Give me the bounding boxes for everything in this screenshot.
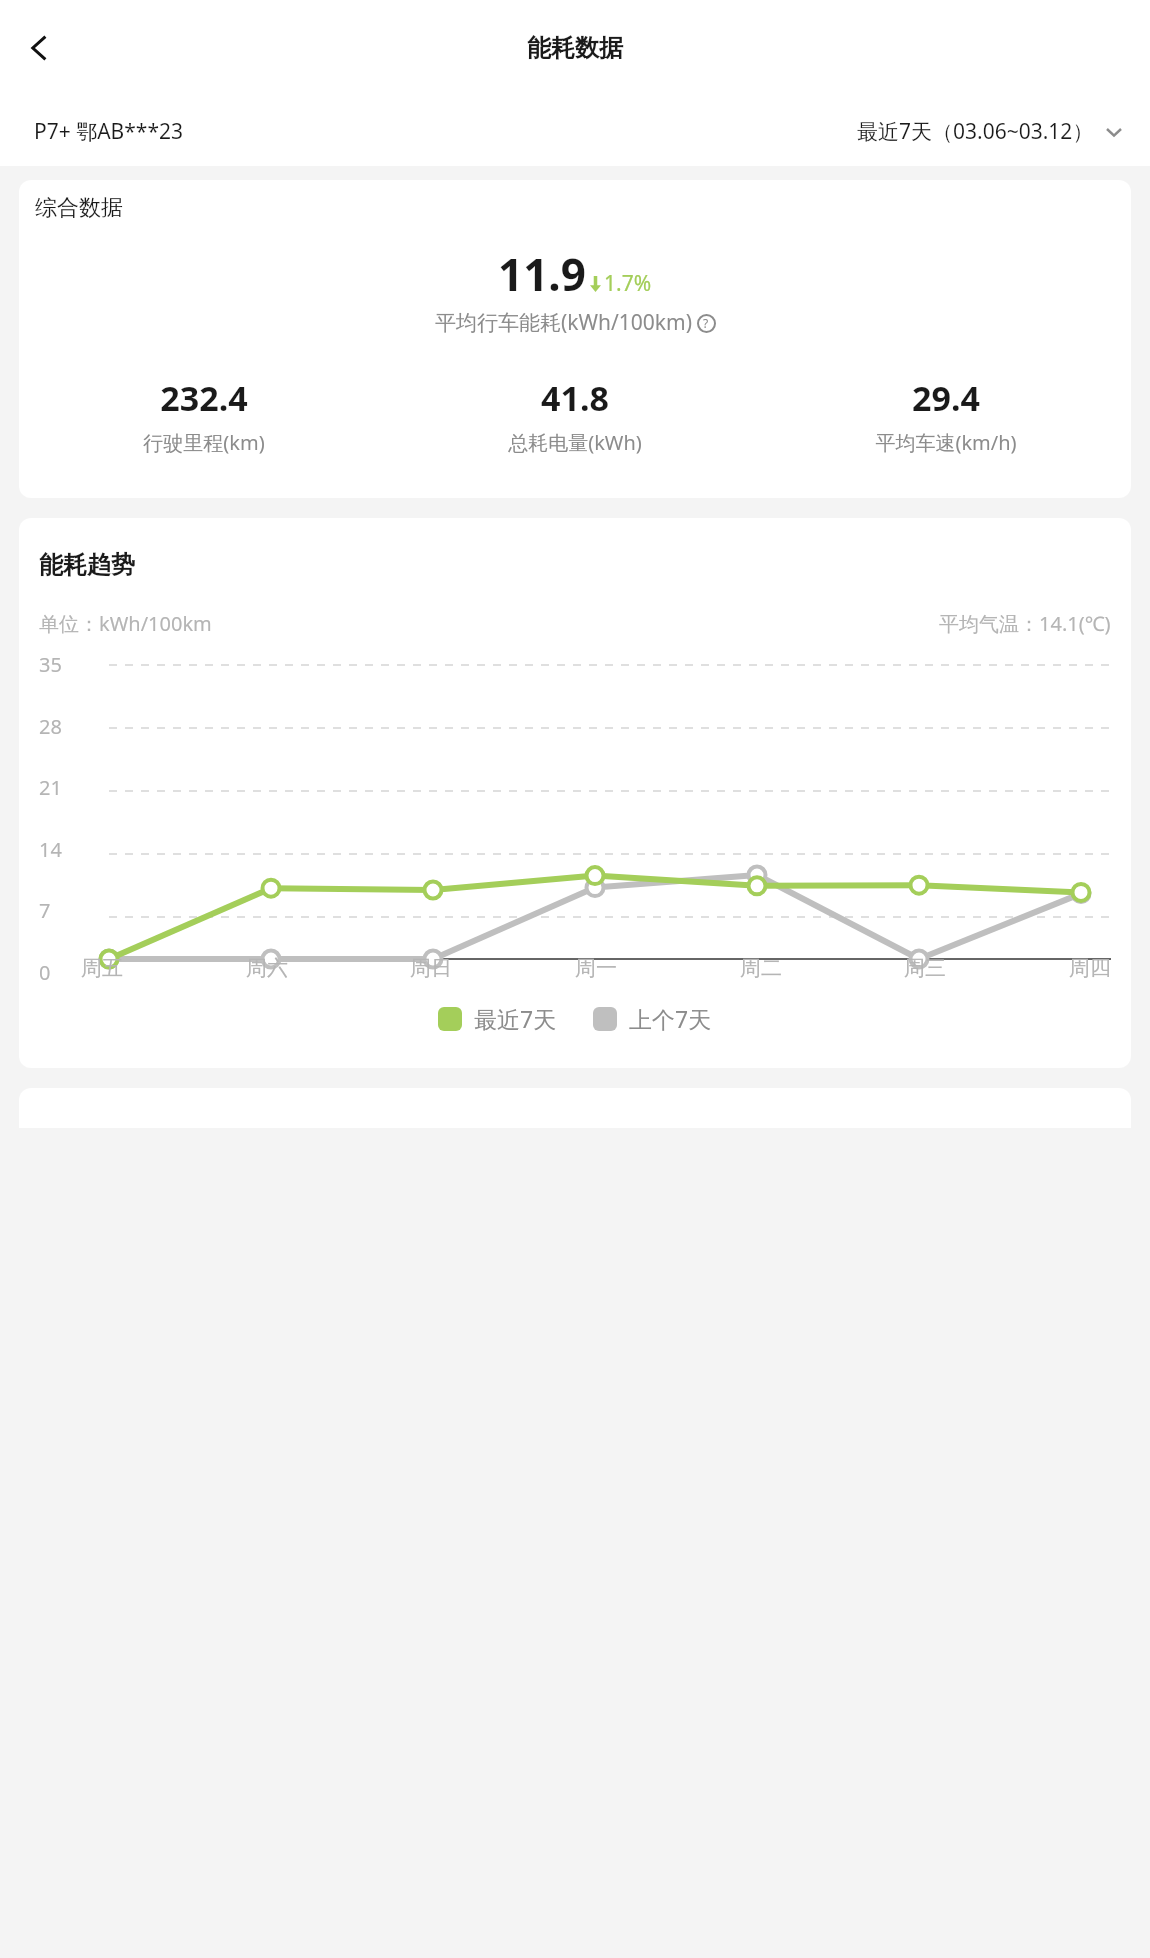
staticText: 周二 bbox=[740, 955, 782, 981]
staticText: 232.4 bbox=[160, 375, 248, 421]
staticText: 能耗趋势 bbox=[39, 550, 135, 580]
staticText: 35 bbox=[39, 651, 62, 673]
button[interactable]: 29.4 bbox=[760, 375, 1131, 456]
staticText: 1.7% bbox=[604, 269, 652, 298]
staticText: 周一 bbox=[575, 955, 617, 981]
staticText: 21 bbox=[39, 774, 62, 796]
staticText: P7+ 鄂AB***23 bbox=[34, 117, 183, 146]
staticText: 综合数据 bbox=[35, 194, 123, 222]
staticText: 周六 bbox=[246, 955, 288, 981]
staticText: 14 bbox=[39, 836, 62, 858]
staticText: 平均车速(km/h) bbox=[875, 429, 1017, 456]
staticText: 周日 bbox=[410, 955, 452, 981]
staticText: 平均行车能耗(kWh/100km) bbox=[435, 308, 693, 337]
button[interactable]: Help bbox=[696, 313, 716, 333]
staticText: 单位：kWh/100km bbox=[39, 610, 212, 637]
staticText: 7 bbox=[39, 897, 51, 919]
staticText: 上个7天 bbox=[629, 1003, 712, 1034]
staticText: 周五 bbox=[81, 955, 123, 981]
button[interactable]: 41.8 bbox=[389, 375, 760, 456]
staticText: 11.9 bbox=[498, 244, 586, 304]
button[interactable]: 综合数据 bbox=[19, 180, 1131, 498]
button[interactable]: 232.4 bbox=[19, 375, 389, 456]
staticText: 能耗数据 bbox=[527, 33, 623, 63]
staticText: 0 bbox=[39, 959, 51, 981]
button[interactable]: 上个7天 bbox=[593, 1003, 712, 1034]
staticText: ? bbox=[703, 315, 709, 331]
staticText: 最近7天 bbox=[474, 1003, 557, 1034]
staticText: 行驶里程(km) bbox=[143, 429, 265, 456]
staticText: 总耗电量(kWh) bbox=[508, 429, 642, 456]
staticText: 41.8 bbox=[541, 375, 609, 421]
button[interactable]: Back bbox=[10, 18, 70, 78]
staticText: 29.4 bbox=[912, 375, 980, 421]
staticText: 28 bbox=[39, 713, 62, 735]
staticText: 周四 bbox=[1069, 955, 1111, 981]
button[interactable]: 最近7天 bbox=[438, 1003, 557, 1034]
staticText: 最近7天（03.06~03.12） bbox=[857, 117, 1094, 146]
staticText: 平均气温：14.1(℃) bbox=[939, 610, 1111, 637]
button[interactable]: 最近7天（03.06~03.12） bbox=[857, 117, 1124, 146]
staticText: 周三 bbox=[904, 955, 946, 981]
